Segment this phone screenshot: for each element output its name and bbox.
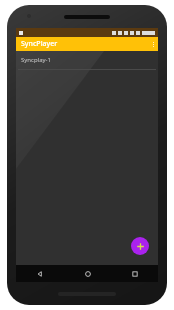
button[interactable]: SyncPlayer (16, 37, 158, 51)
button[interactable]: Add (131, 237, 149, 255)
staticText: Syncplay-1 (21, 56, 51, 64)
button[interactable]: More options (153, 42, 154, 47)
button[interactable]: Syncplay-1 (16, 51, 158, 69)
button[interactable]: Recents (111, 265, 158, 282)
button[interactable]: Home (64, 265, 111, 282)
button[interactable]: Back (16, 265, 64, 282)
staticText: SyncPlayer (21, 39, 58, 49)
